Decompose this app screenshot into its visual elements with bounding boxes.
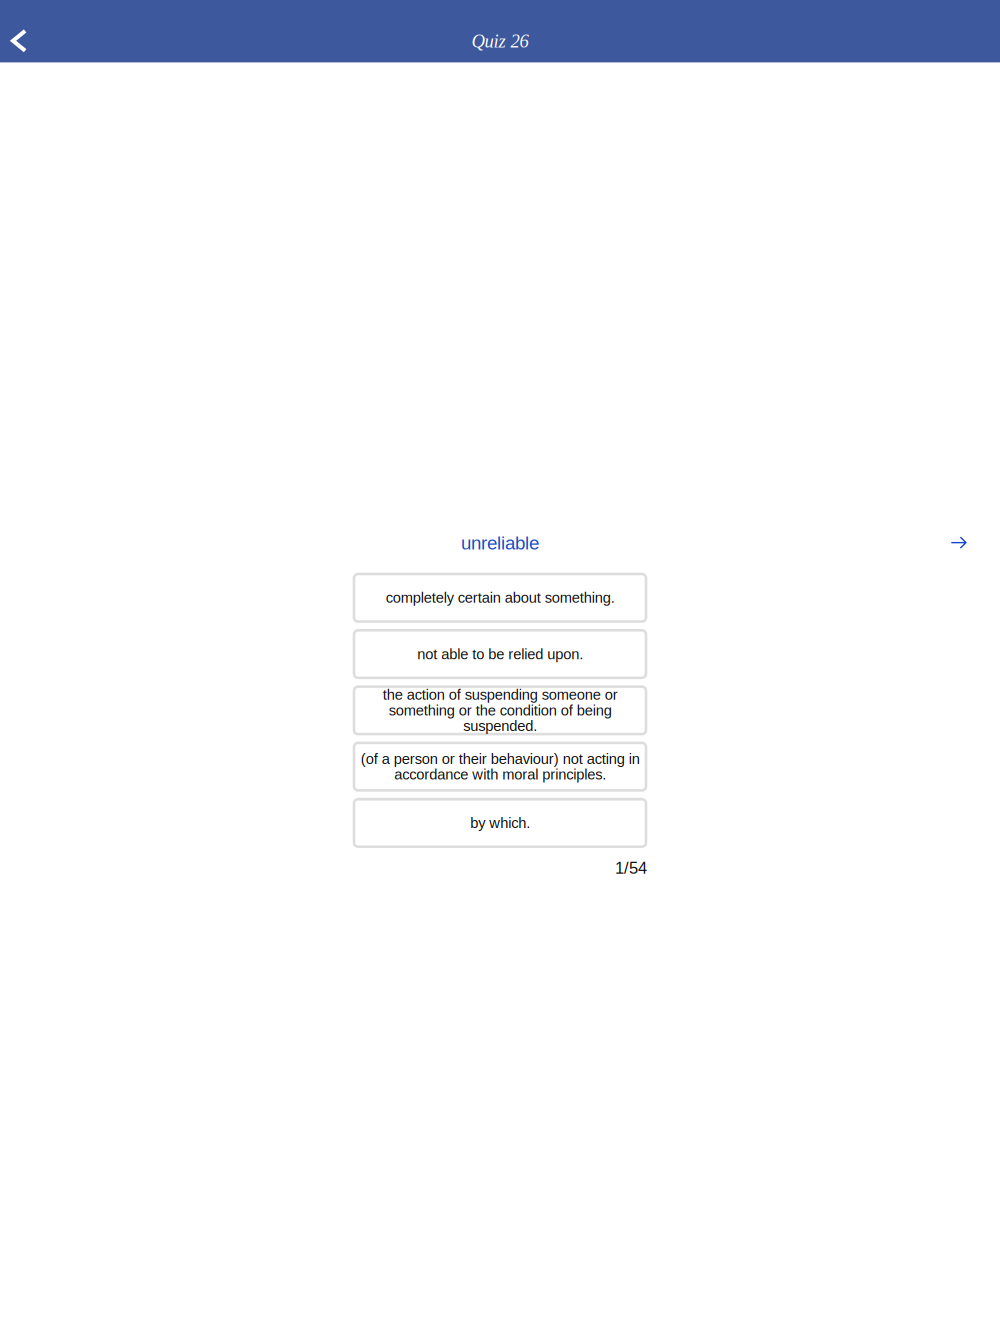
button[interactable]: by which. [354, 799, 646, 847]
button[interactable]: Back [0, 20, 38, 62]
button[interactable]: (of a person or their behaviour) not act… [354, 743, 646, 790]
staticText: (of a person or their behaviour) not act… [360, 751, 639, 783]
staticText: the action of suspending someone or some… [382, 686, 617, 734]
staticText: Quiz 26 [471, 31, 528, 52]
button[interactable]: Next word [935, 527, 983, 559]
staticText: unreliable [461, 533, 539, 553]
button[interactable]: the action of suspending someone or some… [354, 687, 646, 734]
staticText: by which. [470, 815, 530, 831]
staticText: completely certain about something. [385, 590, 614, 606]
staticText: 1/54 [615, 859, 647, 877]
button[interactable]: unreliable [454, 527, 546, 559]
button[interactable]: not able to be relied upon. [354, 630, 646, 678]
button[interactable]: completely certain about something. [354, 574, 646, 621]
staticText: not able to be relied upon. [417, 646, 583, 662]
